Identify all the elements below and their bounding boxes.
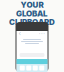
staticText: CLIPBOARD <box>9 17 55 27</box>
staticText: GLOBAL <box>16 9 48 18</box>
staticText: ⋯ <box>38 30 45 37</box>
staticText: ‹ <box>18 29 21 38</box>
staticText: YOUR <box>20 0 43 10</box>
